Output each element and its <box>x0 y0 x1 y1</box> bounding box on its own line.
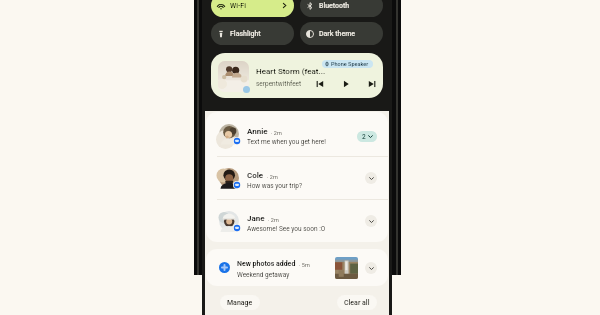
staticText: serpentwithfeet <box>256 80 302 88</box>
staticText: · 2m <box>267 174 278 180</box>
staticText: Annie <box>247 127 268 136</box>
staticText: Weekend getaway <box>237 271 290 279</box>
button[interactable]: Play <box>340 78 351 89</box>
staticText: 2 <box>362 133 366 141</box>
staticText: How was your trip? <box>247 182 302 190</box>
button[interactable]: Cole <box>206 157 388 199</box>
staticText: Text me when you get here! <box>247 138 326 146</box>
staticText: New photos added <box>237 260 296 268</box>
staticText: Wi-Fi <box>230 2 246 10</box>
staticText: Dark theme <box>319 30 356 38</box>
staticText: Heart Storm (feat... <box>256 67 326 76</box>
staticText: Jane <box>247 214 265 223</box>
button[interactable]: Expand <box>365 215 377 227</box>
button[interactable]: Jane <box>206 200 388 242</box>
button[interactable]: Flashlight <box>211 22 294 45</box>
staticText: Awesome! See you soon :O <box>247 225 326 233</box>
button[interactable]: Previous <box>314 78 325 89</box>
staticText: Bluetooth <box>319 2 350 10</box>
staticText: Phone Speaker <box>331 61 369 67</box>
staticText: · 2m <box>271 130 282 136</box>
staticText: Manage <box>227 299 253 307</box>
button[interactable]: Clear all <box>337 295 377 310</box>
button[interactable]: Next <box>366 78 377 89</box>
button[interactable]: Heart Storm (feat... <box>211 53 383 98</box>
staticText: Flashlight <box>230 30 261 38</box>
staticText: Clear all <box>344 299 370 307</box>
button[interactable]: Expand 2 messages <box>357 131 377 142</box>
button[interactable]: Dark theme <box>300 22 383 45</box>
button[interactable]: Annie <box>206 112 388 156</box>
staticText: Cole <box>247 171 264 180</box>
button[interactable]: Phone Speaker <box>322 60 373 68</box>
staticText: · 2m <box>268 217 279 223</box>
button[interactable]: Expand <box>365 262 377 274</box>
button[interactable]: Bluetooth <box>300 0 383 17</box>
staticText: · 5m <box>299 262 310 268</box>
button[interactable]: Manage <box>220 295 260 310</box>
button[interactable]: Expand <box>365 172 377 184</box>
button[interactable]: New photos added <box>206 249 388 286</box>
button[interactable]: Wi-Fi <box>211 0 294 17</box>
